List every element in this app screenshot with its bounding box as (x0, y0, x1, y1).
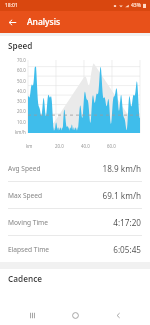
staticText: 69.1 km/h (102, 190, 141, 201)
button[interactable]: Home (64, 305, 86, 325)
staticText: 18:01 (5, 2, 18, 9)
button[interactable]: Elapsed Time (0, 236, 150, 262)
button[interactable]: Back (107, 305, 129, 325)
staticText: Max Speed (8, 191, 102, 200)
staticText: Elapsed Time (8, 245, 113, 254)
staticText: 20.0 (55, 143, 64, 149)
staticText: Cadence (8, 273, 43, 284)
button[interactable]: Recents (21, 305, 43, 325)
staticText: 6:05:45 (113, 244, 141, 255)
staticText: 40.0 (81, 143, 90, 149)
staticText: Analysis (27, 16, 61, 28)
staticText: 70.0 (17, 57, 26, 63)
staticText: Moving Time (8, 218, 113, 227)
button[interactable]: Avg Speed (0, 155, 150, 181)
staticText: km/h (15, 129, 26, 135)
staticText: 60.0 (17, 67, 26, 73)
staticText: km (26, 143, 33, 149)
button[interactable]: Max Speed (0, 182, 150, 208)
staticText: 18.9 km/h (102, 163, 141, 174)
button[interactable]: Moving Time (0, 209, 150, 235)
staticText: 43% (131, 2, 141, 9)
staticText: 40.0 (17, 88, 26, 94)
staticText: 60.0 (107, 143, 116, 149)
staticText: 10.0 (17, 119, 26, 125)
staticText: 4:17:20 (113, 217, 141, 228)
staticText: 30.0 (17, 98, 26, 104)
staticText: Speed (8, 40, 33, 51)
button[interactable]: Back (4, 14, 21, 31)
staticText: Avg Speed (8, 164, 102, 173)
staticText: 50.0 (17, 78, 26, 84)
staticText: 20.0 (17, 108, 26, 114)
